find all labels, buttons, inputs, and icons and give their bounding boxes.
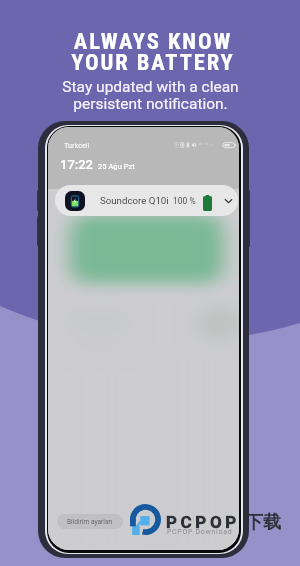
staticText: PCPOP Download bbox=[167, 528, 233, 536]
staticText: 下载 bbox=[245, 511, 281, 534]
staticText: ALWAYS KNOW YOUR BATTERY bbox=[71, 28, 235, 76]
button[interactable]: Soundcore Q10i bbox=[55, 185, 238, 216]
staticText: Stay updated with a clean persistent not… bbox=[62, 78, 239, 113]
staticText: 100 % bbox=[173, 196, 196, 206]
staticText: Bildirim ayarları bbox=[67, 518, 113, 526]
button[interactable]: Bildirim ayarları bbox=[57, 514, 123, 529]
staticText: PCPOP bbox=[166, 512, 240, 532]
other: Expand notification bbox=[224, 198, 233, 204]
staticText: Turkcell bbox=[64, 141, 90, 150]
staticText: 17:22 bbox=[60, 157, 94, 172]
staticText: Soundcore Q10i bbox=[100, 195, 169, 206]
staticText: 25 Ağu Pzt bbox=[98, 162, 135, 171]
